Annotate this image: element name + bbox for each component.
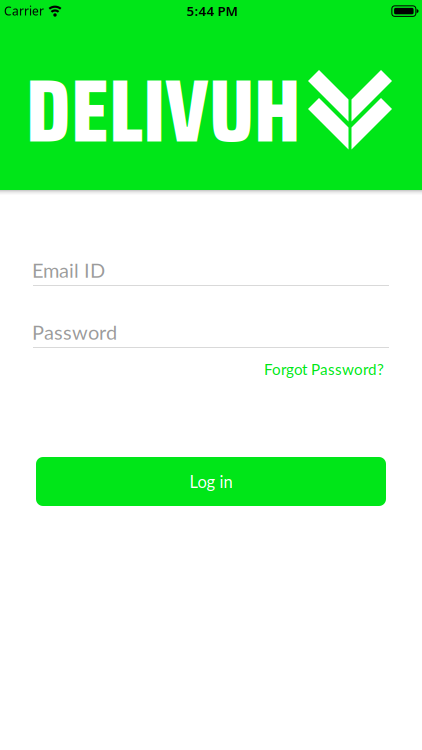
staticText: 5:44 PM	[186, 2, 237, 20]
staticText: DELIVUH	[26, 40, 301, 181]
staticText: Log in	[189, 472, 232, 491]
button[interactable]: Log in	[36, 457, 386, 506]
button[interactable]: Forgot Password?	[264, 360, 384, 378]
staticText: Email ID	[32, 258, 105, 282]
staticText: Carrier	[4, 3, 44, 19]
button[interactable]: Password	[33, 320, 389, 348]
button[interactable]: Email ID	[33, 258, 389, 286]
staticText: Password	[32, 320, 117, 344]
staticText: Forgot Password?	[264, 360, 384, 378]
